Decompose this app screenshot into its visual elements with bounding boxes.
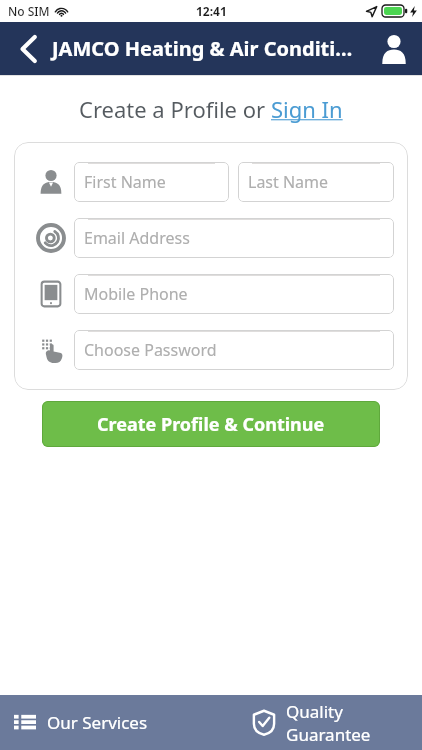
button[interactable]: Last Name xyxy=(238,162,394,202)
button[interactable]: Account xyxy=(370,25,418,73)
button[interactable]: Sign In xyxy=(271,94,343,124)
staticText: Create Profile & Continue xyxy=(97,412,325,437)
staticText: 12:41 xyxy=(196,3,227,19)
staticText: No SIM xyxy=(8,3,50,19)
staticText: First Name xyxy=(84,171,166,193)
button[interactable]: Quality Guarantee xyxy=(211,695,422,750)
staticText: Last Name xyxy=(248,171,329,193)
staticText: Create a Profile or xyxy=(79,94,271,124)
staticText: Sign In xyxy=(271,94,343,124)
button[interactable]: Our Services xyxy=(0,695,211,750)
staticText: JAMCO Heating & Air Conditio... xyxy=(52,35,364,62)
staticText: Mobile Phone xyxy=(84,283,188,305)
staticText: Email Address xyxy=(84,227,190,249)
button[interactable]: Back xyxy=(6,27,50,71)
staticText: Quality Guarantee xyxy=(286,700,422,746)
button[interactable]: Choose Password xyxy=(74,330,394,370)
button[interactable]: First Name xyxy=(74,162,229,202)
button[interactable]: Email Address xyxy=(74,218,394,258)
staticText: Our Services xyxy=(47,711,148,734)
staticText: Choose Password xyxy=(84,339,217,361)
button[interactable]: Create Profile & Continue xyxy=(42,401,380,447)
button[interactable]: Mobile Phone xyxy=(74,274,394,314)
